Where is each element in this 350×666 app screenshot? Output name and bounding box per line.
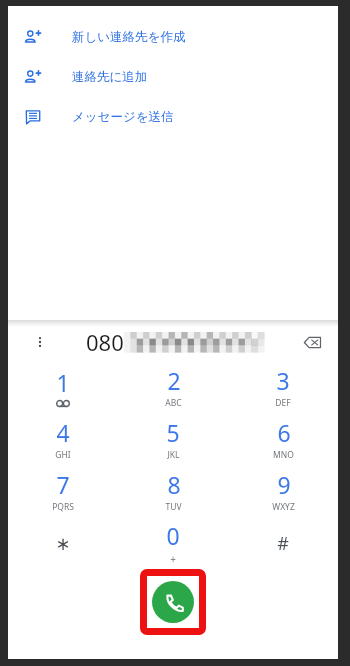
staticText: + — [170, 552, 176, 566]
button[interactable]: 0 — [118, 517, 228, 569]
staticText: TUV — [165, 501, 182, 513]
staticText: 9 — [277, 469, 291, 500]
staticText: 3 — [276, 365, 290, 396]
staticText: 4 — [56, 417, 70, 448]
staticText: メッセージを送信 — [72, 109, 174, 125]
staticText: ABC — [165, 397, 182, 409]
button[interactable]: 9 — [228, 465, 338, 517]
staticText: 7 — [56, 469, 70, 500]
button[interactable]: 2 — [118, 361, 228, 413]
staticText: 5 — [166, 417, 180, 448]
button[interactable]: 連絡先に追加 — [8, 57, 338, 97]
button[interactable]: 6 — [228, 413, 338, 465]
staticText: 連絡先に追加 — [72, 69, 148, 85]
button[interactable]: # — [228, 517, 338, 569]
staticText: # — [277, 531, 289, 556]
staticText: JKL — [167, 449, 180, 461]
button[interactable]: 1 — [8, 361, 118, 413]
staticText: 2 — [167, 365, 181, 396]
button[interactable]: 新しい連絡先を作成 — [8, 17, 338, 57]
staticText: WXYZ — [272, 501, 295, 513]
button[interactable]: ∗ — [8, 517, 118, 569]
button[interactable]: 5 — [118, 413, 228, 465]
button[interactable]: 4 — [8, 413, 118, 465]
staticText: MNO — [273, 449, 294, 461]
button[interactable]: 7 — [8, 465, 118, 517]
button[interactable]: 3 — [228, 361, 338, 413]
button[interactable]: メッセージを送信 — [8, 97, 338, 137]
staticText: 新しい連絡先を作成 — [72, 29, 186, 45]
staticText: PQRS — [52, 501, 74, 513]
staticText: 080 — [86, 327, 124, 357]
staticText: 8 — [167, 469, 181, 500]
button[interactable]: More options — [29, 331, 51, 353]
staticText: 1 — [56, 367, 70, 398]
staticText: GHI — [55, 449, 71, 461]
button[interactable]: Call — [152, 581, 194, 623]
staticText: 6 — [277, 417, 291, 448]
button[interactable]: 8 — [118, 465, 228, 517]
staticText: ∗ — [55, 533, 71, 554]
staticText: DEF — [275, 397, 291, 409]
button[interactable]: Backspace — [298, 328, 326, 356]
staticText: 0 — [166, 520, 180, 551]
